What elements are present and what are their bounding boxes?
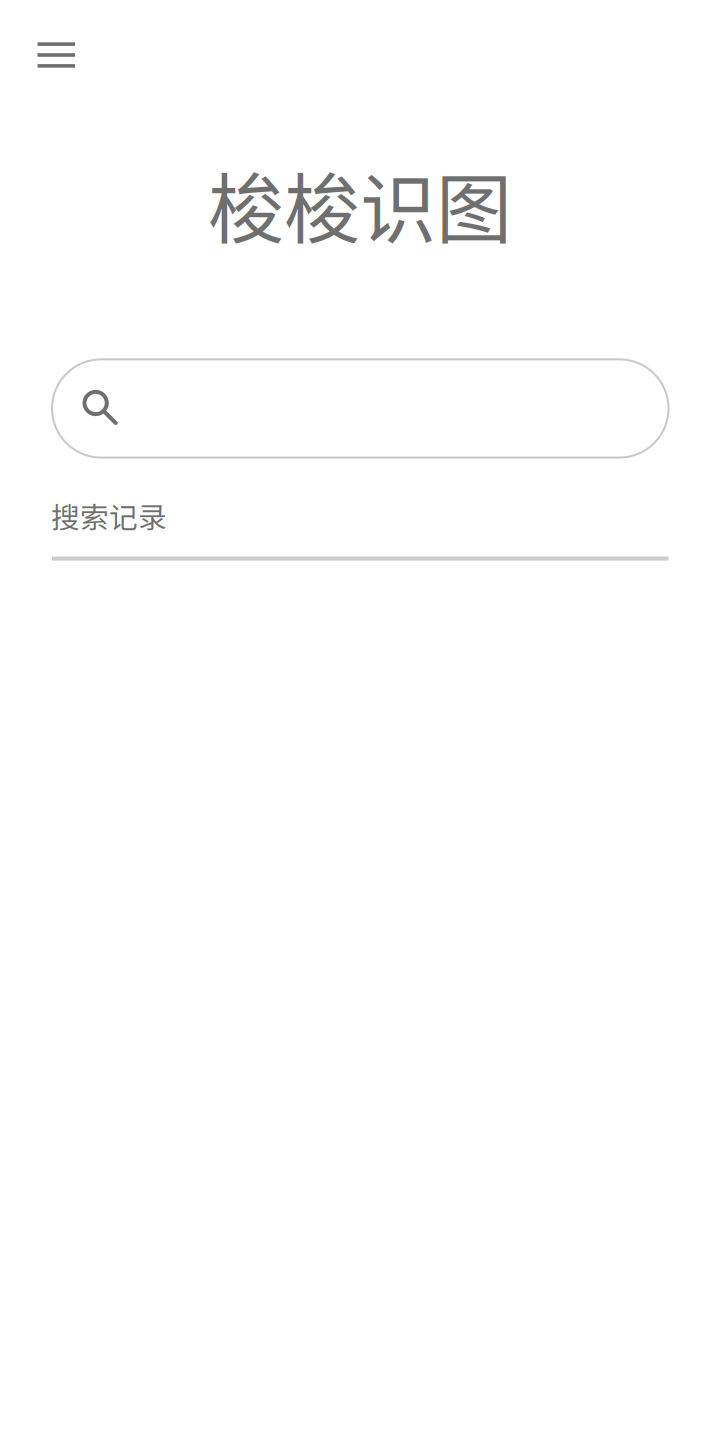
staticText: 搜索记录	[51, 495, 167, 536]
staticText: 梭梭识图	[208, 149, 512, 259]
button[interactable]: Search	[52, 359, 668, 457]
button[interactable]: Menu	[18, 23, 94, 86]
